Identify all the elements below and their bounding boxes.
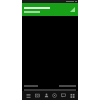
button[interactable]: Home (50, 91, 58, 100)
button[interactable]: Chat (59, 91, 67, 100)
button[interactable]: Grid (68, 91, 76, 100)
button[interactable] (24, 7, 50, 13)
button[interactable]: Menu (24, 91, 32, 100)
button[interactable]: Camera (33, 91, 41, 100)
button[interactable]: Account (42, 91, 50, 100)
button[interactable]: Signal (69, 6, 76, 13)
